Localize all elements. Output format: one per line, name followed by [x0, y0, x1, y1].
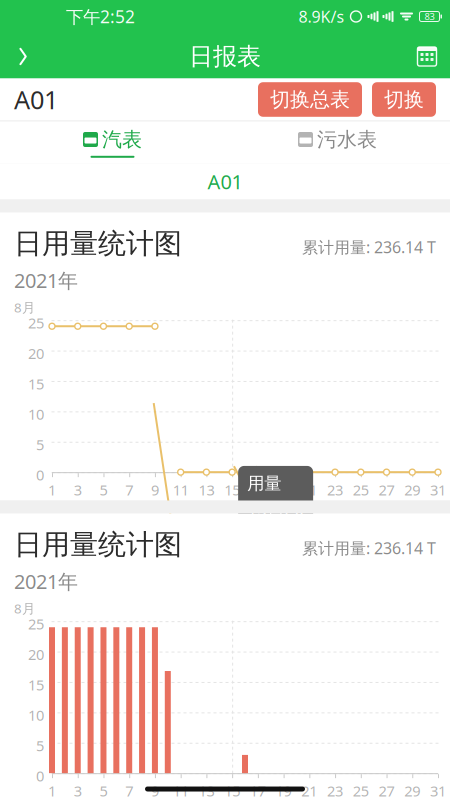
staticText: 29 [404, 480, 420, 500]
staticText: 23 [327, 480, 343, 500]
staticText: 日报表 [189, 42, 261, 71]
staticText: 用量 [247, 473, 281, 494]
staticText: 累计用量: 236.14 T [302, 537, 436, 559]
button[interactable]: 切换 [372, 82, 436, 117]
staticText: 0 [36, 465, 44, 485]
staticText: 27 [378, 781, 394, 800]
staticText: 27 [378, 480, 394, 500]
staticText: 1 [48, 781, 56, 800]
staticText: 9 [151, 480, 159, 500]
staticText: 15 [224, 781, 240, 800]
staticText: 10 [28, 705, 44, 725]
button[interactable]: 切换总表 [258, 82, 362, 117]
staticText: A01 [207, 168, 242, 195]
staticText: 1 [48, 480, 56, 500]
staticText: 切换 [384, 87, 424, 112]
staticText: 20 [28, 645, 44, 664]
staticText: 7 [125, 781, 133, 800]
staticText: A01 [14, 83, 58, 116]
staticText: 19 [276, 781, 292, 800]
staticText: 31 [430, 781, 446, 800]
staticText: 汽表 [102, 127, 142, 152]
staticText: 17 [250, 781, 266, 800]
button[interactable]: 污水表 [225, 121, 450, 163]
staticText: 15日: 0 [247, 497, 304, 520]
staticText: 25 [28, 313, 44, 333]
staticText: 日用量统计图 [14, 527, 182, 562]
button[interactable]: 返回 [0, 34, 46, 78]
staticText: 11 [173, 480, 189, 500]
staticText: 8月 [14, 599, 35, 617]
staticText: 5 [36, 435, 44, 454]
staticText: 3 [74, 781, 82, 800]
button[interactable]: 选择日期 [404, 34, 450, 78]
staticText: 5 [36, 736, 44, 755]
staticText: 13 [198, 781, 214, 800]
staticText: 25 [28, 614, 44, 634]
staticText: 83 [424, 10, 434, 23]
staticText: 3 [74, 480, 82, 500]
staticText: 2021年 [14, 568, 78, 594]
staticText: 13 [198, 480, 214, 500]
staticText: 15 [28, 675, 44, 694]
staticText: 20 [28, 344, 44, 363]
staticText: 21 [301, 781, 317, 800]
staticText: 2021年 [14, 267, 78, 293]
staticText: 9 [151, 781, 159, 800]
staticText: 19 [276, 480, 292, 500]
staticText: 15 [28, 374, 44, 393]
staticText: 8.9K/s [298, 6, 344, 27]
staticText: 8月 [14, 298, 35, 316]
staticText: 21 [301, 480, 317, 500]
staticText: 10 [28, 404, 44, 424]
staticText: 0 [36, 766, 44, 786]
staticText: 29 [404, 781, 420, 800]
staticText: 5 [99, 480, 107, 500]
button[interactable]: 汽表 [0, 121, 225, 163]
staticText: 7 [125, 480, 133, 500]
staticText: 25 [353, 781, 369, 800]
staticText: 17 [250, 480, 266, 500]
staticText: 15 [224, 480, 240, 500]
staticText: 污水表 [317, 127, 377, 152]
staticText: 切换总表 [270, 87, 350, 112]
staticText: 25 [353, 480, 369, 500]
staticText: 日用量统计图 [14, 226, 182, 261]
staticText: 5 [99, 781, 107, 800]
staticText: 23 [327, 781, 343, 800]
staticText: 下午2:52 [66, 5, 135, 28]
staticText: 累计用量: 236.14 T [302, 236, 436, 258]
staticText: 11 [173, 781, 189, 800]
staticText: 31 [430, 480, 446, 500]
